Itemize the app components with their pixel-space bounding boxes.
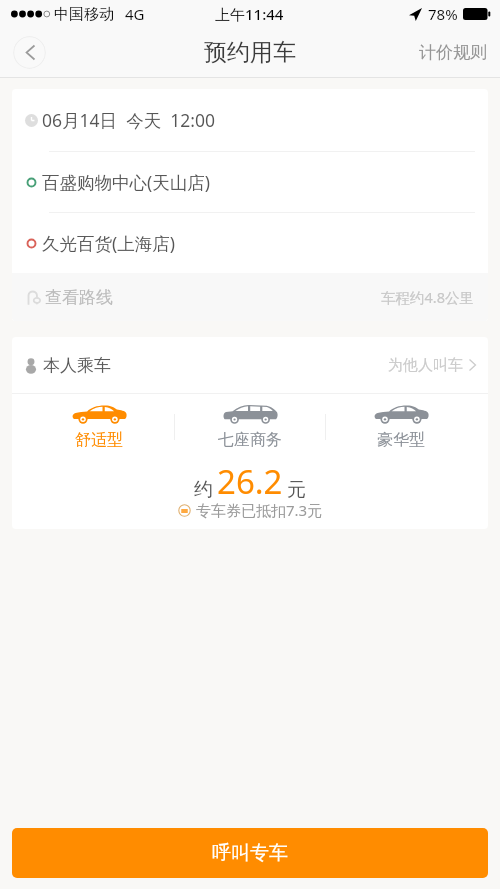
staticText: 上午11:44	[215, 4, 284, 24]
staticText: 久光百货(上海店)	[42, 231, 175, 255]
staticText: 26.2	[217, 459, 283, 504]
button[interactable]: 06月14日 今天 12:00	[12, 89, 488, 151]
staticText: 车程约4.8公里	[381, 287, 474, 307]
staticText: 预约用车	[204, 38, 296, 67]
staticText: 百盛购物中心(天山店)	[42, 170, 210, 194]
button[interactable]: 本人乘车	[12, 337, 488, 393]
button[interactable]: 百盛购物中心(天山店)	[12, 152, 488, 212]
staticText: 查看路线	[45, 287, 113, 308]
staticText: 4G	[125, 4, 145, 24]
staticText: 06月14日 今天 12:00	[42, 108, 215, 132]
staticText: 中国移动	[54, 5, 114, 24]
staticText: 七座商务	[218, 430, 282, 450]
button[interactable]: 呼叫专车	[12, 828, 488, 878]
staticText: 舒适型	[75, 430, 123, 450]
staticText: 专车券已抵扣7.3元	[196, 500, 323, 520]
staticText: 呼叫专车	[212, 841, 288, 865]
staticText: 元	[287, 478, 306, 502]
staticText: 约	[194, 478, 213, 502]
staticText: 为他人叫车	[388, 356, 463, 375]
button[interactable]: 豪华型	[326, 394, 476, 459]
button[interactable]: 七座商务	[175, 394, 325, 459]
button[interactable]: 计价规则	[419, 28, 487, 77]
staticText: 计价规则	[419, 42, 487, 63]
staticText: 78%	[428, 4, 458, 24]
staticText: 本人乘车	[43, 355, 111, 376]
button[interactable]: 查看路线	[12, 273, 488, 321]
staticText: 豪华型	[377, 430, 425, 450]
button[interactable]: 舒适型	[24, 394, 174, 459]
button[interactable]: 久光百货(上海店)	[12, 213, 488, 273]
button[interactable]: Back	[13, 36, 46, 69]
